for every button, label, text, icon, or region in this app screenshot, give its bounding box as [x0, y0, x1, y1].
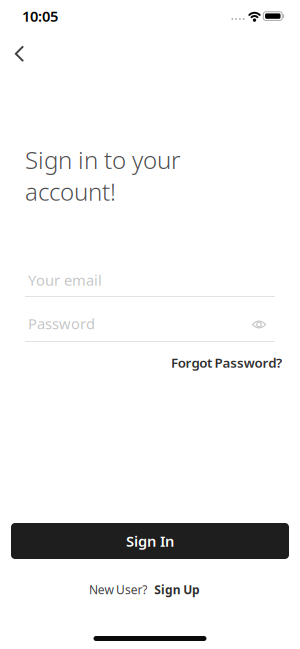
staticText: Password: [28, 314, 95, 333]
button[interactable]: Sign Up: [154, 581, 200, 597]
staticText: 10:05: [22, 6, 58, 26]
staticText: Sign Up: [154, 581, 200, 597]
button[interactable]: Back: [4, 39, 34, 69]
staticText: Your email: [28, 270, 102, 290]
button[interactable]: Forgot Password?: [171, 354, 282, 371]
staticText: Sign in to your: [25, 144, 180, 175]
button[interactable]: Show password: [250, 317, 268, 331]
staticText: account!: [25, 175, 116, 207]
staticText: Forgot Password?: [171, 354, 282, 371]
button[interactable]: Sign In: [11, 523, 289, 559]
staticText: Sign In: [126, 531, 174, 551]
staticText: New User?: [89, 581, 147, 597]
